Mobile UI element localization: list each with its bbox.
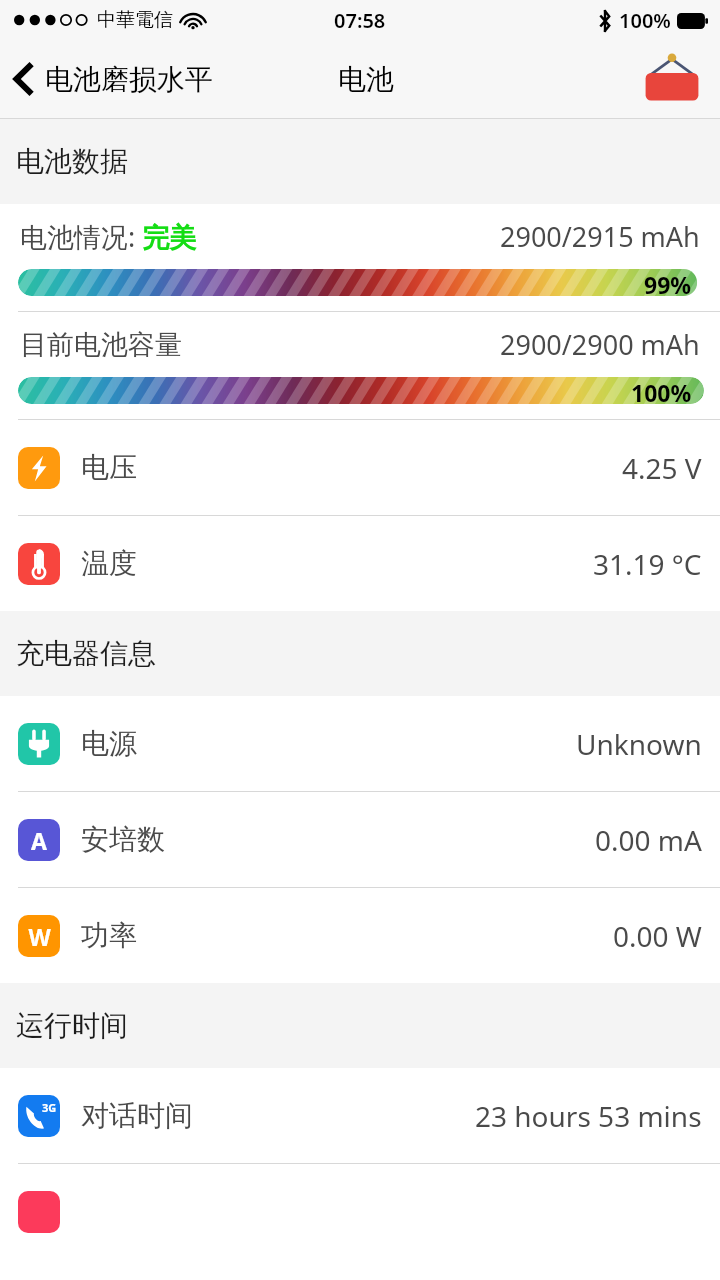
button[interactable]: Temperature: [0, 516, 720, 611]
staticText: 电池情况: 完美: [20, 218, 197, 255]
button[interactable]: Voltage: [0, 420, 720, 515]
button[interactable]: PRO: [642, 49, 702, 109]
staticText: 电源: [81, 726, 137, 761]
staticText: 2900/2900 mAh: [500, 326, 700, 363]
staticText: 0.00 mA: [595, 821, 702, 859]
staticText: 电池数据: [16, 144, 128, 179]
staticText: 99%: [644, 269, 692, 296]
staticText: 100%: [619, 7, 671, 34]
staticText: 安培数: [81, 822, 165, 857]
staticText: 电压: [81, 450, 137, 485]
button[interactable]: Talk time: [0, 1068, 720, 1163]
button[interactable]: Wattage: [0, 888, 720, 983]
staticText: 2900/2915 mAh: [500, 218, 700, 255]
staticText: Unknown: [576, 725, 702, 763]
other: Wifi time: [18, 1191, 60, 1233]
staticText: 充电器信息: [16, 636, 156, 671]
other: Voltage: [18, 447, 60, 489]
button[interactable]: Power source: [0, 696, 720, 791]
staticText: 对话时间: [81, 1098, 193, 1133]
staticText: 电池: [338, 62, 394, 97]
button[interactable]: 电池情况: 完美: [0, 204, 720, 311]
other: Back: [14, 62, 34, 96]
staticText: 电池磨损水平: [45, 62, 213, 97]
other: Power source: [18, 723, 60, 765]
staticText: A: [31, 825, 47, 856]
staticText: W: [28, 921, 51, 952]
other: Temperature: [18, 543, 60, 585]
other: Wattage: [18, 915, 60, 957]
staticText: 温度: [81, 546, 137, 581]
staticText: 目前电池容量: [20, 328, 182, 362]
staticText: 23 hours 53 mins: [475, 1097, 702, 1135]
staticText: 0.00 W: [613, 917, 702, 955]
button[interactable]: Amperage: [0, 792, 720, 887]
staticText: 功率: [81, 918, 137, 953]
button[interactable]: Wifi time: [0, 1164, 720, 1259]
other: Amperage: [18, 819, 60, 861]
staticText: 100%: [631, 377, 692, 404]
staticText: 3G: [42, 1100, 57, 1115]
staticText: 4.25 V: [622, 449, 702, 487]
button[interactable]: 目前电池容量: [0, 312, 720, 419]
staticText: 运行时间: [16, 1008, 128, 1043]
staticText: 07:58: [334, 7, 386, 34]
staticText: 31.19 °C: [593, 545, 702, 583]
staticText: 中華電信: [97, 8, 173, 32]
other: Talk time: [18, 1095, 60, 1137]
button[interactable]: Back: [0, 40, 221, 118]
